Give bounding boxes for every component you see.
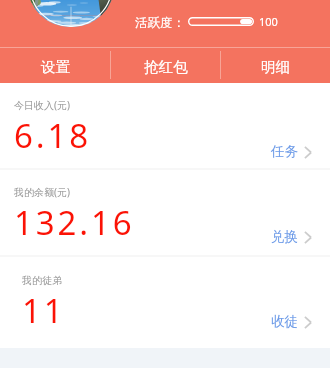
staticText: 收徒: [271, 313, 298, 330]
staticText: 任务: [271, 143, 298, 160]
staticText: 11: [22, 288, 66, 333]
button[interactable]: 抢红包: [111, 48, 220, 83]
button[interactable]: 设置: [0, 48, 110, 83]
button[interactable]: Profile avatar: [28, 0, 114, 27]
staticText: 设置: [41, 58, 70, 76]
staticText: 6.18: [14, 113, 92, 158]
staticText: 我的徒弟: [22, 274, 62, 287]
staticText: 今日收入(元): [14, 98, 70, 112]
staticText: 132.16: [14, 200, 135, 245]
staticText: 活跃度：: [135, 15, 185, 31]
staticText: 明细: [261, 58, 290, 76]
button[interactable]: 我的徒弟: [0, 255, 330, 348]
button[interactable]: 我的余额(元): [0, 169, 330, 255]
staticText: 兑换: [271, 228, 298, 245]
button[interactable]: 明细: [221, 48, 330, 83]
staticText: 我的余额(元): [14, 185, 70, 199]
staticText: 抢红包: [144, 58, 188, 76]
staticText: 100: [259, 14, 278, 29]
button[interactable]: 今日收入(元): [0, 83, 330, 168]
